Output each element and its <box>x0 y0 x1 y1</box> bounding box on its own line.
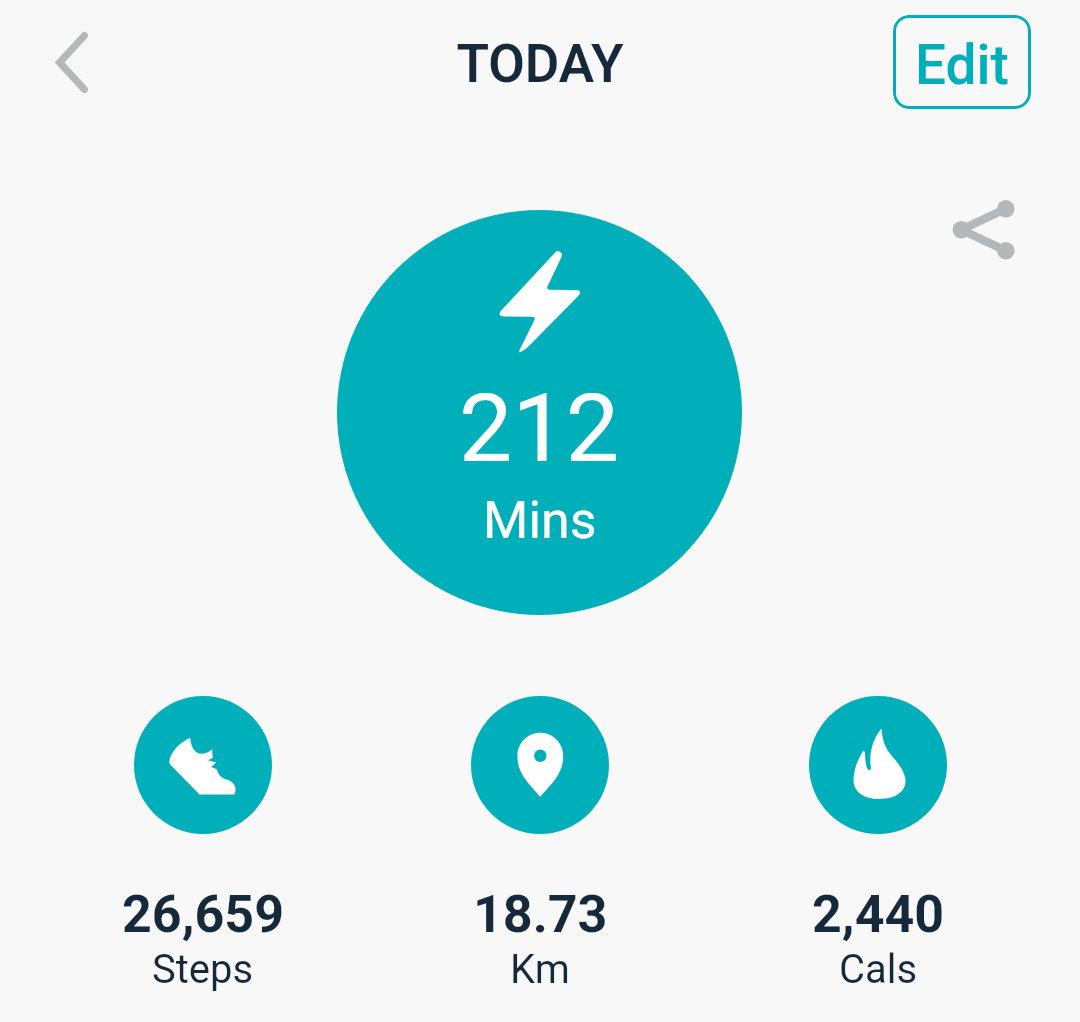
button[interactable]: 212 <box>337 210 742 615</box>
button[interactable]: 2,440 <box>768 696 988 993</box>
staticText: Km <box>510 946 570 993</box>
button[interactable]: 18.73 <box>430 696 650 993</box>
button[interactable]: Edit <box>893 15 1031 109</box>
staticText: TODAY <box>0 33 1080 95</box>
staticText: Mins <box>483 490 597 551</box>
button[interactable]: Back <box>17 7 127 117</box>
staticText: 26,659 <box>122 884 284 945</box>
staticText: 2,440 <box>812 884 945 945</box>
button[interactable]: 26,659 <box>93 696 313 993</box>
staticText: 18.73 <box>473 884 608 945</box>
staticText: 212 <box>459 373 620 484</box>
button[interactable]: Share <box>928 174 1040 286</box>
staticText: Edit <box>915 33 1009 97</box>
staticText: Steps <box>152 946 254 993</box>
staticText: Cals <box>839 946 918 993</box>
